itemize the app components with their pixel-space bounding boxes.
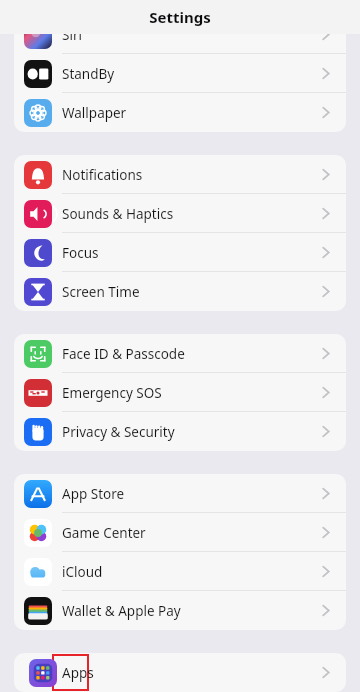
button[interactable]: App Store: [14, 474, 346, 513]
staticText: Face ID & Passcode: [62, 345, 322, 363]
staticText: Apps: [62, 664, 322, 682]
button[interactable]: Face ID & Passcode: [14, 334, 346, 373]
staticText: Emergency SOS: [62, 384, 322, 402]
staticText: App Store: [62, 485, 322, 503]
button[interactable]: Apps: [14, 653, 346, 692]
button[interactable]: Sounds & Haptics: [14, 194, 346, 233]
staticText: Wallet & Apple Pay: [62, 602, 322, 620]
button[interactable]: Game Center: [14, 513, 346, 552]
staticText: Notifications: [62, 166, 322, 184]
button[interactable]: Privacy & Security: [14, 412, 346, 451]
button[interactable]: Screen Time: [14, 272, 346, 311]
button[interactable]: Focus: [14, 233, 346, 272]
button[interactable]: Wallpaper: [14, 93, 346, 132]
staticText: Siri: [62, 26, 322, 44]
button[interactable]: StandBy: [14, 54, 346, 93]
staticText: Wallpaper: [62, 104, 322, 122]
button[interactable]: Notifications: [14, 155, 346, 194]
staticText: iCloud: [62, 563, 322, 581]
staticText: Screen Time: [62, 283, 322, 301]
staticText: Sounds & Haptics: [62, 205, 322, 223]
staticText: Settings: [149, 7, 211, 27]
button[interactable]: Emergency SOS: [14, 373, 346, 412]
staticText: Focus: [62, 244, 322, 262]
staticText: Privacy & Security: [62, 423, 322, 441]
staticText: Game Center: [62, 524, 322, 542]
button[interactable]: iCloud: [14, 552, 346, 591]
button[interactable]: Siri: [14, 15, 346, 54]
staticText: StandBy: [62, 65, 322, 83]
button[interactable]: Wallet & Apple Pay: [14, 591, 346, 630]
